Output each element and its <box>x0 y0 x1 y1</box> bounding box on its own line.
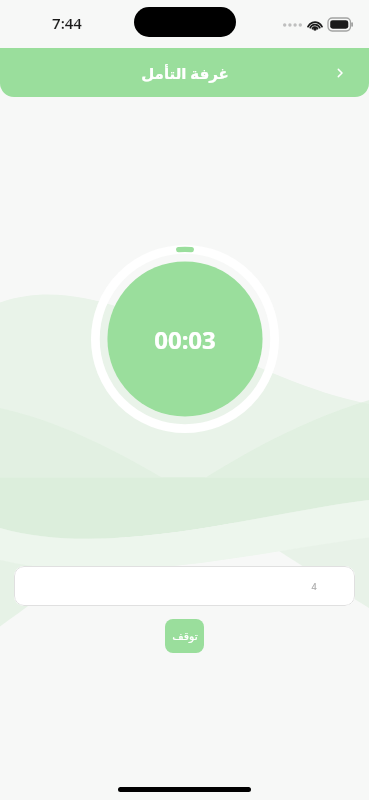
other: Next <box>331 64 349 82</box>
staticText: توقف <box>172 630 198 643</box>
button[interactable]: توقف <box>165 619 204 653</box>
staticText: غرفة التأمل <box>141 63 229 83</box>
button[interactable]: Meditation timer <box>91 245 279 433</box>
staticText: 7:44 <box>52 13 82 33</box>
staticText: 00:03 <box>154 323 216 356</box>
staticText: 4 <box>311 580 317 592</box>
button[interactable]: غرفة التأمل <box>0 48 369 97</box>
button[interactable]: 4 <box>14 566 355 606</box>
